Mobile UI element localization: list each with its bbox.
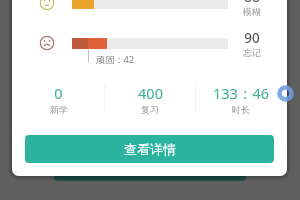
- button[interactable]: 查看详情: [25, 135, 274, 163]
- button[interactable]: Scroll handle: [276, 84, 295, 103]
- staticText: 0: [54, 83, 63, 103]
- button[interactable]: 400: [105, 83, 195, 115]
- staticText: 查看详情: [124, 141, 176, 157]
- staticText: 时长: [232, 104, 250, 115]
- staticText: 复习: [141, 104, 159, 115]
- staticText: 模糊: [243, 6, 261, 17]
- staticText: 顽固：42: [96, 53, 135, 66]
- staticText: 400: [138, 83, 163, 103]
- staticText: 88: [244, 0, 260, 6]
- button[interactable]: 133：46: [196, 83, 286, 115]
- staticText: 133：46: [213, 83, 269, 103]
- staticText: 90: [244, 29, 260, 47]
- button[interactable]: 0: [13, 83, 104, 115]
- staticText: 忘记: [243, 47, 261, 58]
- staticText: 新学: [50, 104, 68, 115]
